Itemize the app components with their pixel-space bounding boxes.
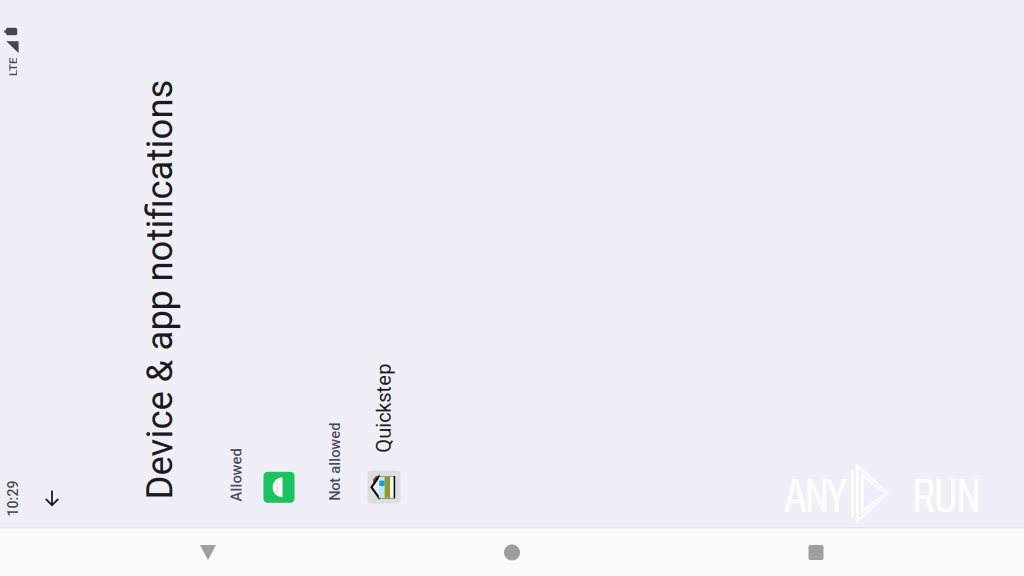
button[interactable]: Recent apps [608,528,1024,576]
button[interactable]: Home [416,528,608,576]
staticText: RUN [912,457,981,533]
button[interactable]: Back [0,528,416,576]
staticText: ANY [783,457,847,533]
